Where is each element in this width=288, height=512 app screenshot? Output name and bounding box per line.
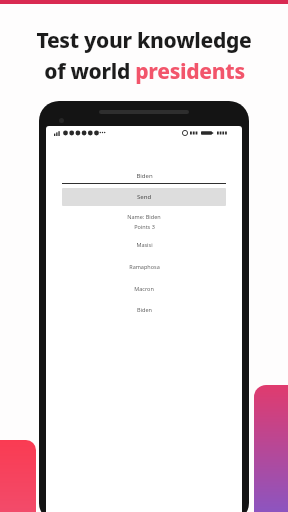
staticText: Ramaphosa (129, 263, 160, 270)
button[interactable]: Macron (62, 285, 226, 292)
staticText: Biden (137, 306, 152, 313)
staticText: Send (137, 193, 152, 201)
button[interactable]: Ramaphosa (62, 263, 226, 270)
staticText: Macron (134, 285, 154, 292)
button[interactable]: Biden (62, 172, 226, 184)
staticText: of world presidents (44, 57, 245, 86)
button[interactable]: Send (62, 188, 226, 206)
staticText: Test your knowledge (36, 26, 252, 55)
staticText: Masisi (136, 241, 153, 248)
staticText: Biden (136, 172, 153, 180)
button[interactable]: Masisi (62, 241, 226, 248)
staticText: Name: Biden (127, 213, 161, 220)
button[interactable]: Biden (62, 306, 226, 313)
staticText: Points 3 (134, 223, 155, 230)
